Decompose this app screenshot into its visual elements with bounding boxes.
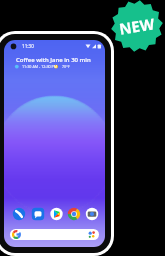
button[interactable]: Play Store: [50, 207, 64, 221]
button[interactable]: Chrome: [67, 207, 81, 221]
button[interactable]: Search: [10, 229, 99, 240]
staticText: 70°F: [62, 64, 70, 69]
staticText: NEW: [118, 13, 156, 39]
button[interactable]: Phone: [12, 207, 26, 221]
staticText: 11:30: [22, 43, 34, 49]
button[interactable]: Messages: [31, 207, 45, 221]
button[interactable]: Camera: [85, 207, 99, 221]
staticText: Coffee with Jane in 30 min: [16, 56, 91, 64]
button[interactable]: Coffee with Jane in 30 min: [4, 52, 105, 72]
staticText: 11:30 AM - 12:30 PM: [22, 64, 58, 69]
button[interactable]: New: [111, 0, 163, 52]
